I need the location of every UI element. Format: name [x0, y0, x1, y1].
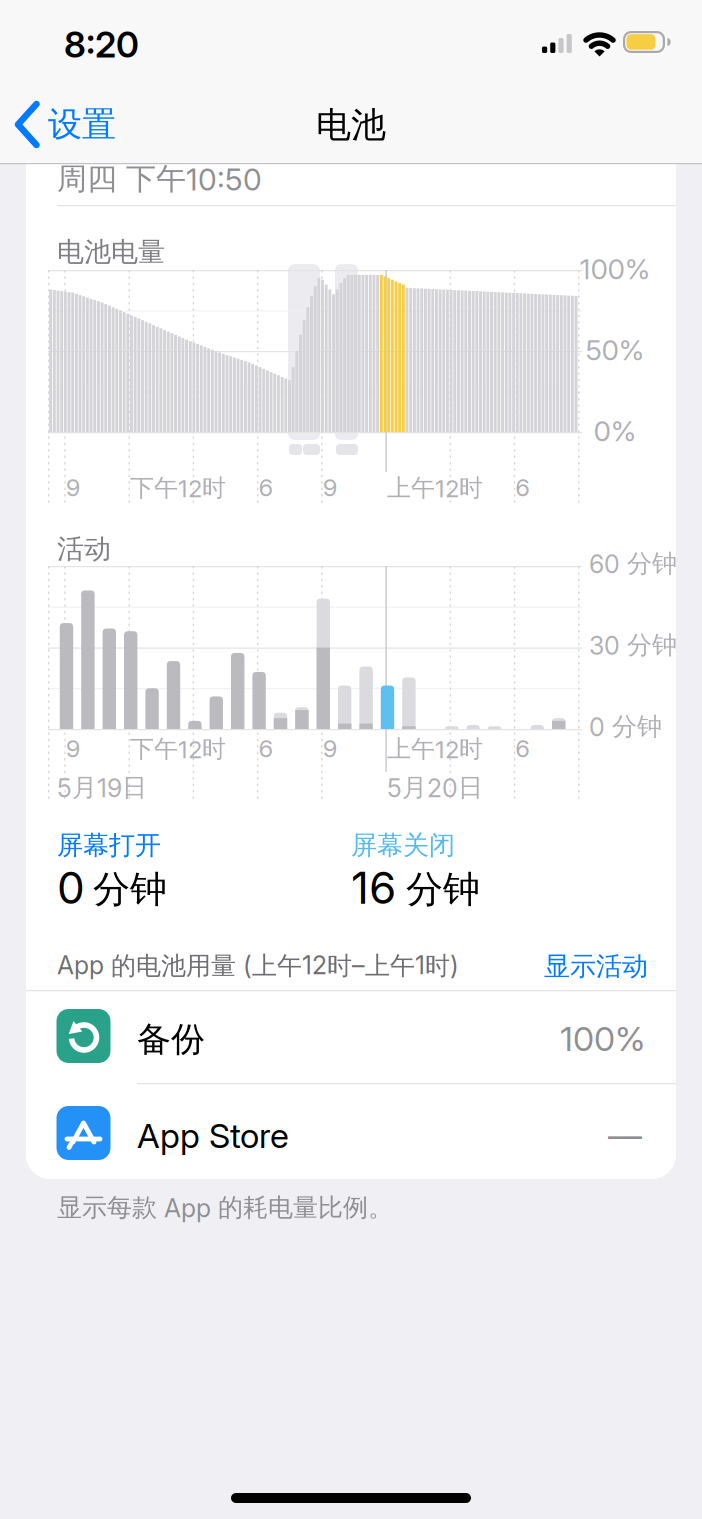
staticText: 0% [593, 414, 636, 448]
staticText: 9 [323, 734, 338, 763]
staticText: 下午12时 [130, 734, 226, 764]
staticText: 6 [515, 734, 530, 763]
staticText: 9 [66, 473, 81, 502]
staticText: 显示活动 [544, 950, 648, 983]
staticText: 分钟 [406, 866, 480, 913]
staticText: 设置 [48, 103, 116, 146]
staticText: 电池 [316, 103, 386, 147]
staticText: 100% [560, 1018, 645, 1059]
staticText: 6 [515, 473, 530, 502]
staticText: App Store [137, 1115, 289, 1156]
staticText: 上午12时 [387, 473, 483, 503]
staticText: 5月19日 [57, 772, 147, 803]
staticText: 上午12时 [387, 734, 483, 764]
staticText: 下午12时 [130, 473, 226, 503]
staticText: 16 [351, 861, 396, 914]
staticText: 9 [66, 734, 81, 763]
staticText: 30 分钟 [589, 629, 677, 661]
staticText: 60 分钟 [589, 548, 677, 579]
staticText: 8:20 [64, 23, 139, 66]
staticText: 6 [258, 734, 273, 763]
staticText: App 的电池用量 (上午12时–上午1时) [57, 950, 459, 982]
staticText: 0 分钟 [589, 711, 662, 742]
staticText: 9 [323, 473, 338, 502]
staticText: 100% [579, 252, 650, 286]
staticText: 分钟 [93, 866, 167, 913]
staticText: 备份 [137, 1018, 205, 1061]
staticText: 活动 [57, 532, 111, 566]
staticText: 6 [258, 473, 273, 502]
staticText: 50% [585, 333, 644, 367]
staticText: 显示每款 App 的耗电量比例。 [57, 1192, 393, 1223]
staticText: 5月20日 [387, 772, 483, 803]
staticText: 电池电量 [57, 235, 165, 269]
staticText: 周四 下午10:50 [57, 160, 262, 198]
staticText: 0 [57, 861, 85, 914]
staticText: 屏幕打开 [57, 829, 161, 862]
staticText: — [608, 1115, 642, 1156]
staticText: 屏幕关闭 [351, 829, 455, 862]
